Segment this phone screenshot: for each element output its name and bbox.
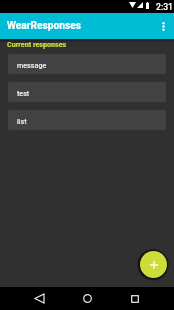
- staticText: test: [17, 89, 30, 97]
- button[interactable]: Recents: [119, 287, 151, 310]
- staticText: list: [17, 117, 27, 125]
- staticText: Current responses: [7, 40, 67, 48]
- button[interactable]: More options: [152, 15, 174, 37]
- button[interactable]: Back: [23, 287, 55, 310]
- button[interactable]: message: [8, 54, 166, 74]
- button[interactable]: Home: [71, 287, 103, 310]
- staticText: 2:31: [156, 2, 173, 12]
- button[interactable]: list: [8, 110, 166, 130]
- staticText: WearResponses: [7, 20, 81, 32]
- button[interactable]: test: [8, 82, 166, 102]
- staticText: message: [17, 61, 47, 69]
- button[interactable]: Add response: [140, 251, 167, 278]
